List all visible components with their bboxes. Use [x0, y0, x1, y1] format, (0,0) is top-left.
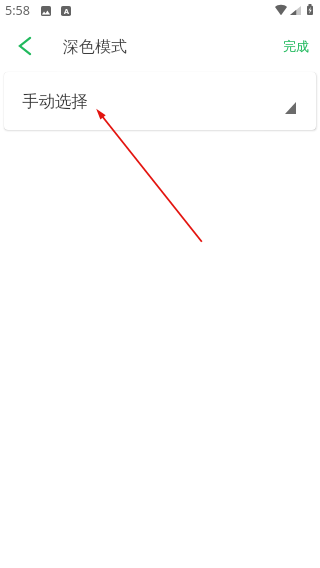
- staticText: A: [64, 6, 69, 16]
- staticText: 手动选择: [22, 91, 88, 112]
- button[interactable]: 完成: [272, 32, 320, 60]
- staticText: 5:58: [5, 2, 30, 19]
- other: Expand: [285, 102, 296, 114]
- staticText: 深色模式: [63, 37, 127, 57]
- button[interactable]: Back: [5, 26, 45, 66]
- staticText: 完成: [283, 38, 309, 54]
- button[interactable]: 手动选择: [4, 72, 316, 130]
